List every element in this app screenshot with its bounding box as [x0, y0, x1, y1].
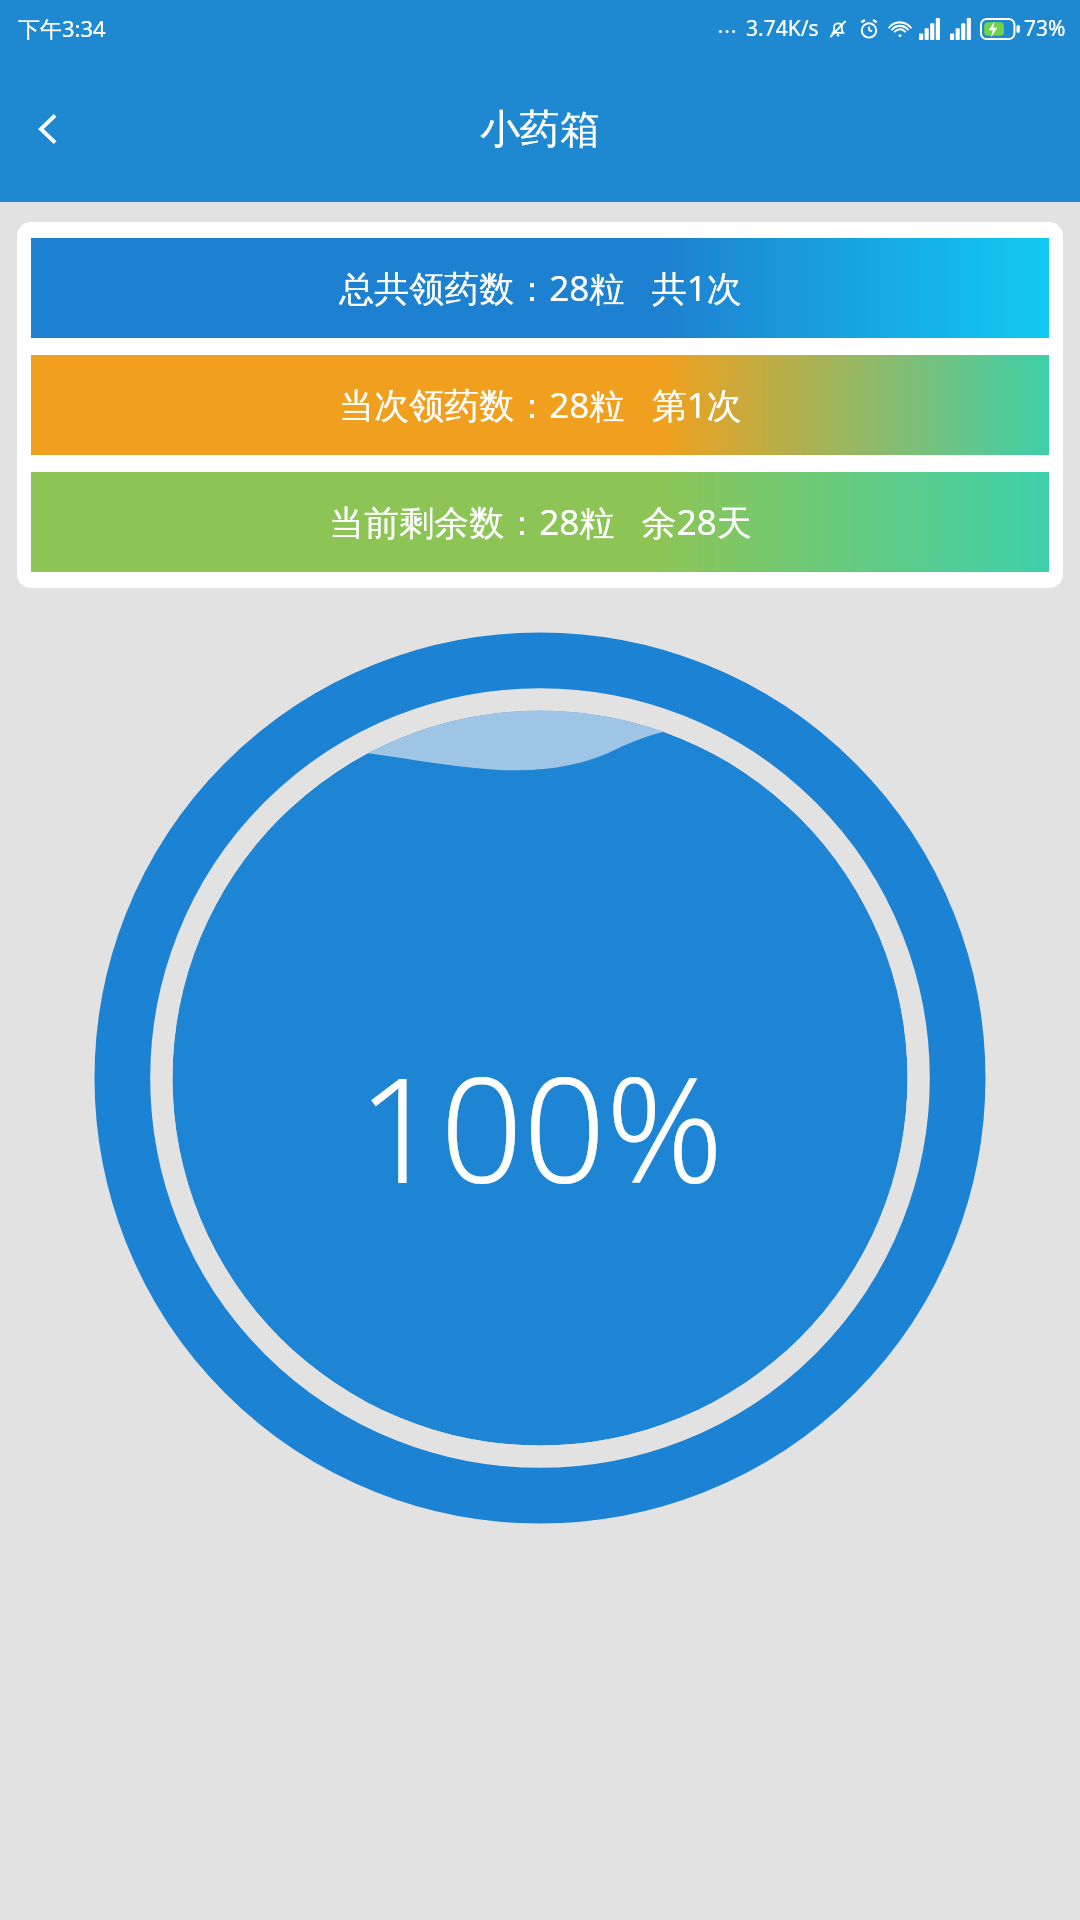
button[interactable]: Remaining medicine 100 percent: [90, 628, 990, 1528]
staticText: 73%: [1024, 14, 1066, 43]
staticText: 下午3:34: [18, 13, 106, 43]
button[interactable]: 总共领药数：28粒 共1次: [31, 238, 1049, 338]
staticText: 当前剩余数：28粒 余28天: [329, 498, 752, 546]
staticText: 当次领药数：28粒 第1次: [339, 381, 742, 429]
button[interactable]: 当前剩余数：28粒 余28天: [31, 472, 1049, 572]
button[interactable]: Back: [10, 90, 88, 168]
button[interactable]: 当次领药数：28粒 第1次: [31, 355, 1049, 455]
staticText: 3.74K/s: [746, 14, 819, 43]
staticText: 100%: [357, 1028, 724, 1225]
staticText: 小药箱: [480, 104, 600, 154]
staticText: 总共领药数：28粒 共1次: [339, 264, 742, 312]
